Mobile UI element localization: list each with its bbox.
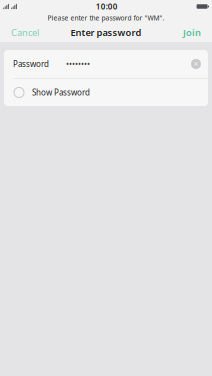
staticText: Show Password	[32, 87, 90, 98]
staticText: ✕	[193, 60, 199, 68]
staticText: Join	[183, 26, 201, 39]
staticText: 10:00	[96, 1, 118, 12]
button[interactable]: Cancel	[7, 22, 43, 43]
staticText: Password	[13, 59, 49, 69]
staticText: Enter password	[70, 26, 141, 39]
staticText: Cancel	[11, 26, 39, 39]
staticText: ••••••••	[66, 59, 90, 69]
staticText: Please enter the password for "WM".	[47, 14, 164, 22]
button[interactable]: Clear password	[191, 59, 201, 69]
button[interactable]: Join	[179, 22, 205, 43]
button[interactable]: Show Password	[4, 79, 208, 106]
